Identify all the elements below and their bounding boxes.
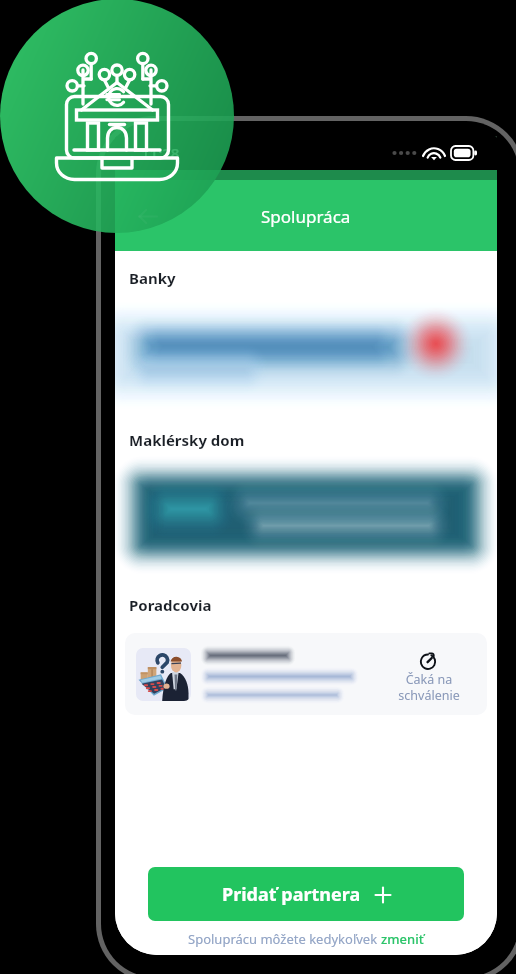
staticText: zmeniť <box>381 930 424 948</box>
staticText: Pridať partnera <box>222 882 361 907</box>
staticText: Maklérsky dom <box>129 430 245 450</box>
button[interactable] <box>115 294 497 414</box>
button[interactable]: Čaká na schválenie <box>125 633 487 715</box>
button[interactable]: Spoluprácu môžete kedykoľvek <box>115 930 497 948</box>
staticText: Spolupráca <box>261 205 351 228</box>
button[interactable]: Pridať partnera <box>148 867 464 921</box>
button[interactable] <box>115 461 497 581</box>
button[interactable]: Späť <box>128 196 168 236</box>
staticText: Čaká na schválenie <box>374 671 484 704</box>
staticText: Spoluprácu môžete kedykoľvek <box>188 930 381 948</box>
staticText: Poradcovia <box>129 595 212 615</box>
staticText: 11:28 <box>141 143 180 163</box>
staticText: Banky <box>129 268 176 288</box>
